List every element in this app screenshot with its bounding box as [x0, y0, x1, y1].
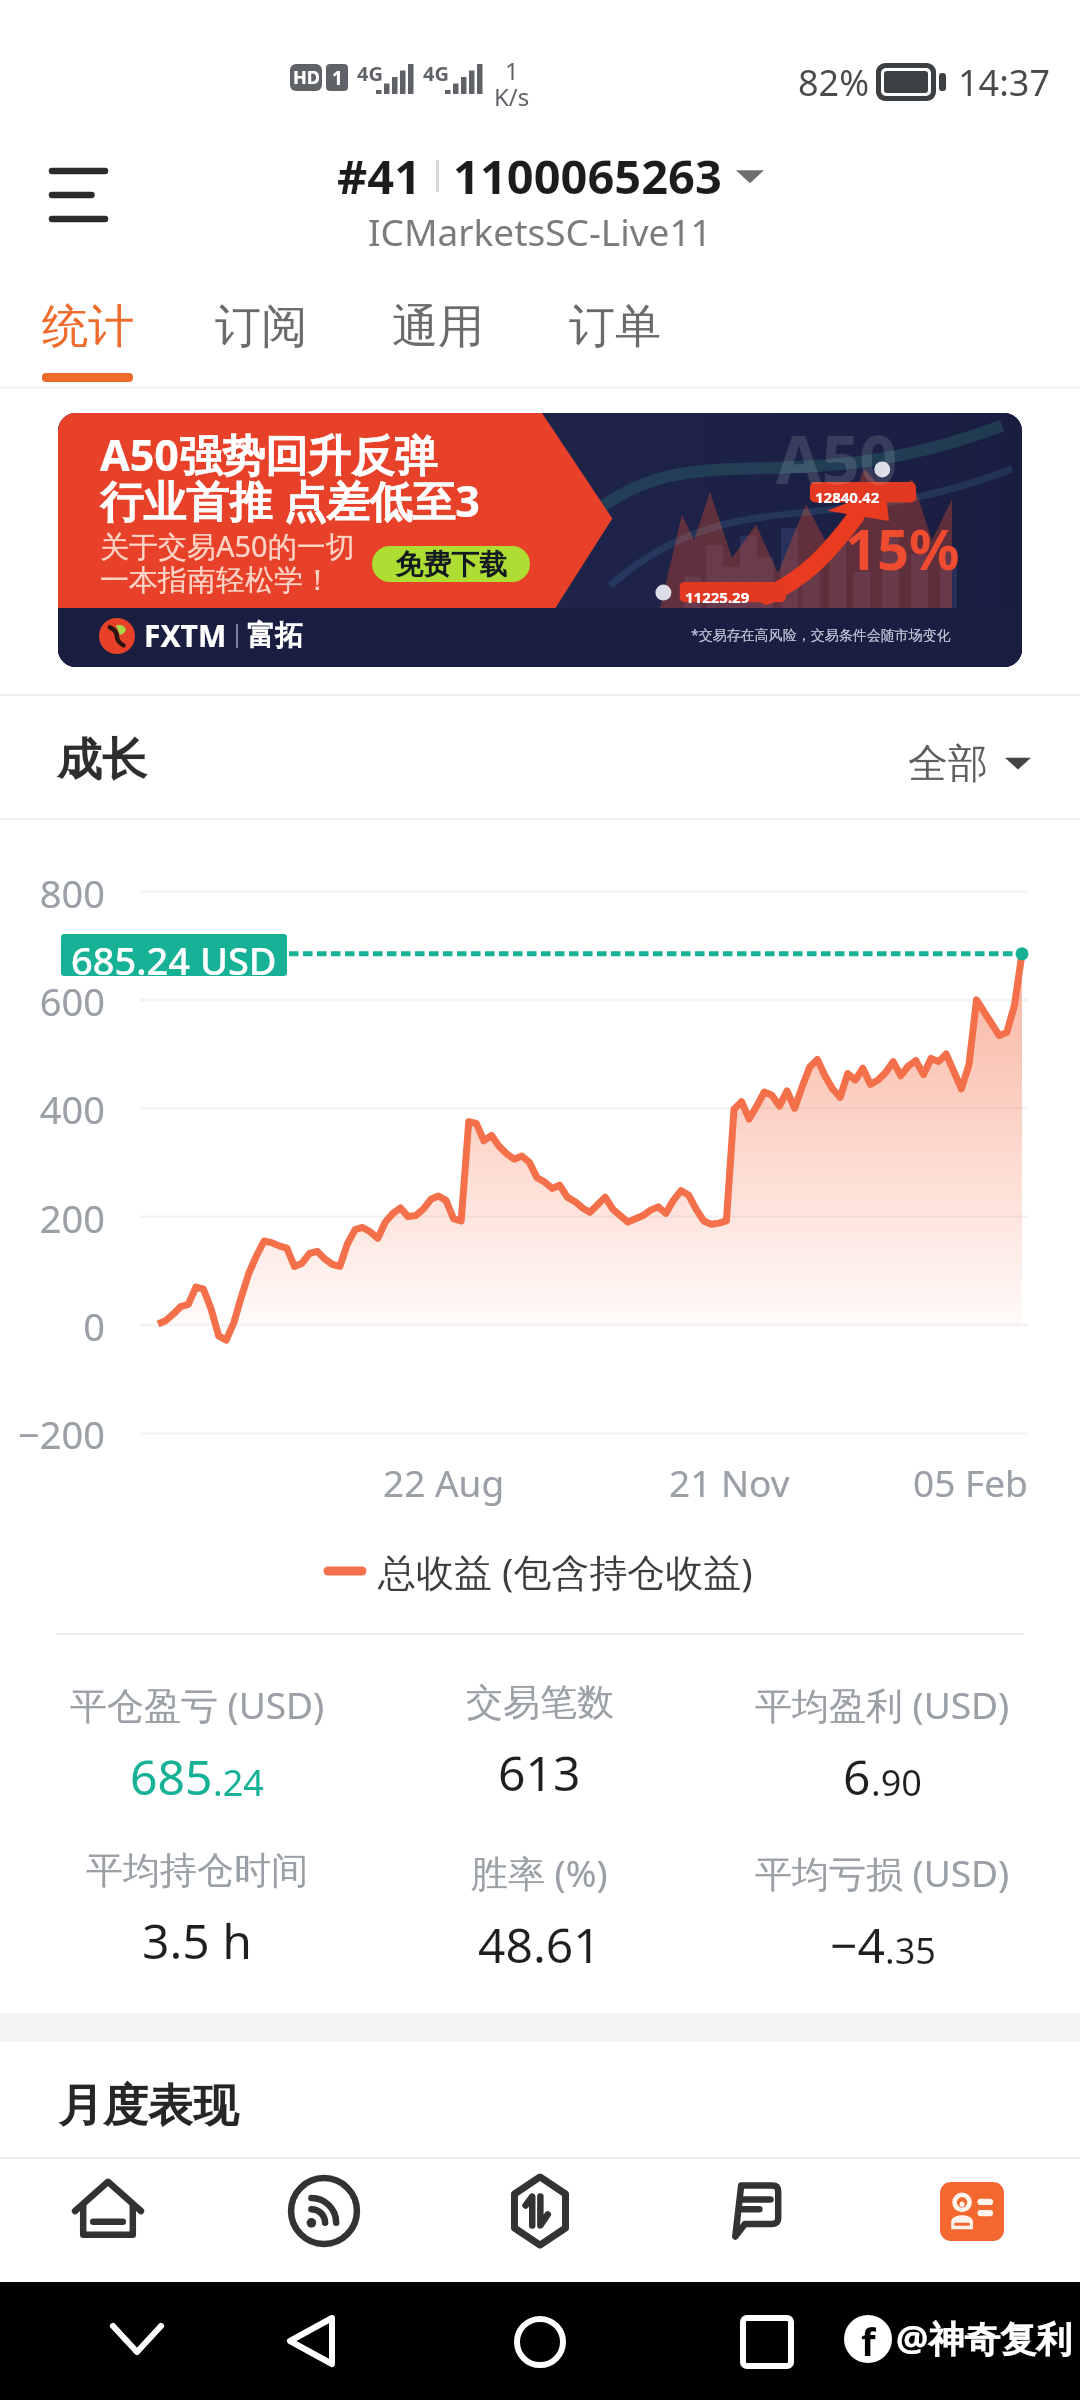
- staticText: 1100065263: [453, 144, 722, 208]
- staticText: 6: [843, 1744, 871, 1809]
- staticText: *交易存在高风险，交易条件会随市场变化: [691, 625, 951, 644]
- staticText: A50: [776, 413, 898, 503]
- staticText: 平均持仓时间: [86, 1847, 308, 1894]
- staticText: 0: [0, 1300, 105, 1352]
- staticText: 统计: [42, 298, 134, 356]
- button[interactable]: FXTM A50 advertisement: [58, 413, 1022, 667]
- staticText: 48.61: [478, 1912, 601, 1977]
- staticText: 4G: [357, 60, 383, 87]
- button[interactable]: 统计: [42, 298, 134, 356]
- staticText: 平均亏损 (USD): [755, 1847, 1010, 1898]
- staticText: 一本指南轻松学！: [100, 562, 332, 599]
- staticText: 200: [0, 1192, 105, 1244]
- staticText: 15%: [845, 510, 960, 586]
- button[interactable]: News: [270, 2159, 378, 2263]
- staticText: 22 Aug: [383, 1457, 505, 1507]
- staticText: 免费下载: [395, 547, 507, 582]
- staticText: 平仓盈亏 (USD): [70, 1679, 325, 1730]
- staticText: 1: [332, 65, 343, 91]
- button[interactable]: Trade: [486, 2159, 594, 2263]
- staticText: 全部: [908, 738, 988, 788]
- staticText: #41: [337, 144, 422, 208]
- button[interactable]: Home: [514, 2316, 566, 2368]
- button[interactable]: Menu: [30, 146, 128, 243]
- staticText: 订阅: [215, 298, 307, 356]
- staticText: 行业首推 点差低至3: [100, 471, 480, 530]
- staticText: f: [861, 2315, 876, 2363]
- button[interactable]: 全部: [908, 738, 1031, 788]
- button[interactable]: Messages: [702, 2159, 810, 2263]
- button[interactable]: #41: [337, 144, 764, 208]
- staticText: 685.24 USD: [71, 934, 277, 976]
- button[interactable]: 订单: [569, 298, 661, 356]
- staticText: 600: [0, 975, 105, 1027]
- staticText: .90: [871, 1758, 922, 1807]
- button[interactable]: 免费下载: [372, 546, 530, 582]
- staticText: 05 Feb: [913, 1457, 1028, 1507]
- staticText: −200: [0, 1408, 105, 1460]
- button[interactable]: 通用: [392, 298, 484, 356]
- staticText: 613: [498, 1740, 581, 1805]
- staticText: 平均盈利 (USD): [755, 1679, 1010, 1730]
- staticText: 交易笔数: [466, 1679, 614, 1726]
- button[interactable]: Hide keyboard: [113, 2326, 161, 2352]
- button[interactable]: Home: [54, 2159, 162, 2263]
- staticText: 12840.42: [815, 487, 880, 507]
- staticText: 800: [0, 867, 105, 919]
- button[interactable]: Accounts: [920, 2159, 1024, 2263]
- staticText: HD: [293, 65, 320, 90]
- staticText: .35: [885, 1926, 936, 1975]
- staticText: FXTM: [144, 615, 227, 656]
- staticText: @神奇复利: [896, 2314, 1073, 2363]
- button[interactable]: Recents: [743, 2318, 791, 2366]
- staticText: 21 Nov: [669, 1457, 790, 1507]
- staticText: 富拓: [247, 618, 303, 653]
- staticText: 成长: [57, 732, 147, 789]
- staticText: 4G: [423, 60, 449, 87]
- staticText: −4: [830, 1912, 885, 1977]
- button[interactable]: 订阅: [215, 298, 307, 356]
- staticText: 3.5 h: [142, 1908, 252, 1973]
- staticText: .24: [213, 1758, 264, 1807]
- staticText: A50强势回升反弹: [100, 425, 437, 484]
- staticText: 通用: [392, 298, 484, 356]
- staticText: 14:37: [958, 58, 1051, 107]
- staticText: 总收益 (包含持仓收益): [378, 1545, 753, 1597]
- staticText: 685: [130, 1744, 213, 1809]
- staticText: 订单: [569, 298, 661, 356]
- staticText: 关于交易A50的一切: [100, 526, 355, 566]
- staticText: 月度表现: [58, 2078, 238, 2135]
- staticText: 胜率 (%): [471, 1847, 608, 1898]
- staticText: ICMarketsSC-Live11: [368, 206, 712, 256]
- staticText: 1: [505, 54, 519, 87]
- button[interactable]: Back: [288, 2316, 332, 2366]
- staticText: 82%: [798, 58, 870, 107]
- staticText: K/s: [494, 80, 530, 113]
- staticText: 11225.29: [685, 587, 750, 607]
- staticText: 400: [0, 1083, 105, 1135]
